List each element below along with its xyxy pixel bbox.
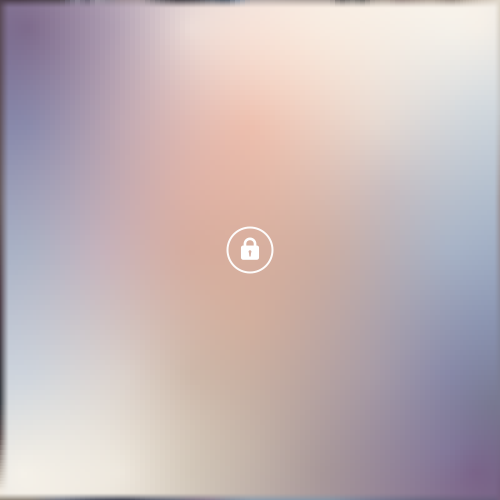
button[interactable]: Unlock xyxy=(227,227,272,272)
